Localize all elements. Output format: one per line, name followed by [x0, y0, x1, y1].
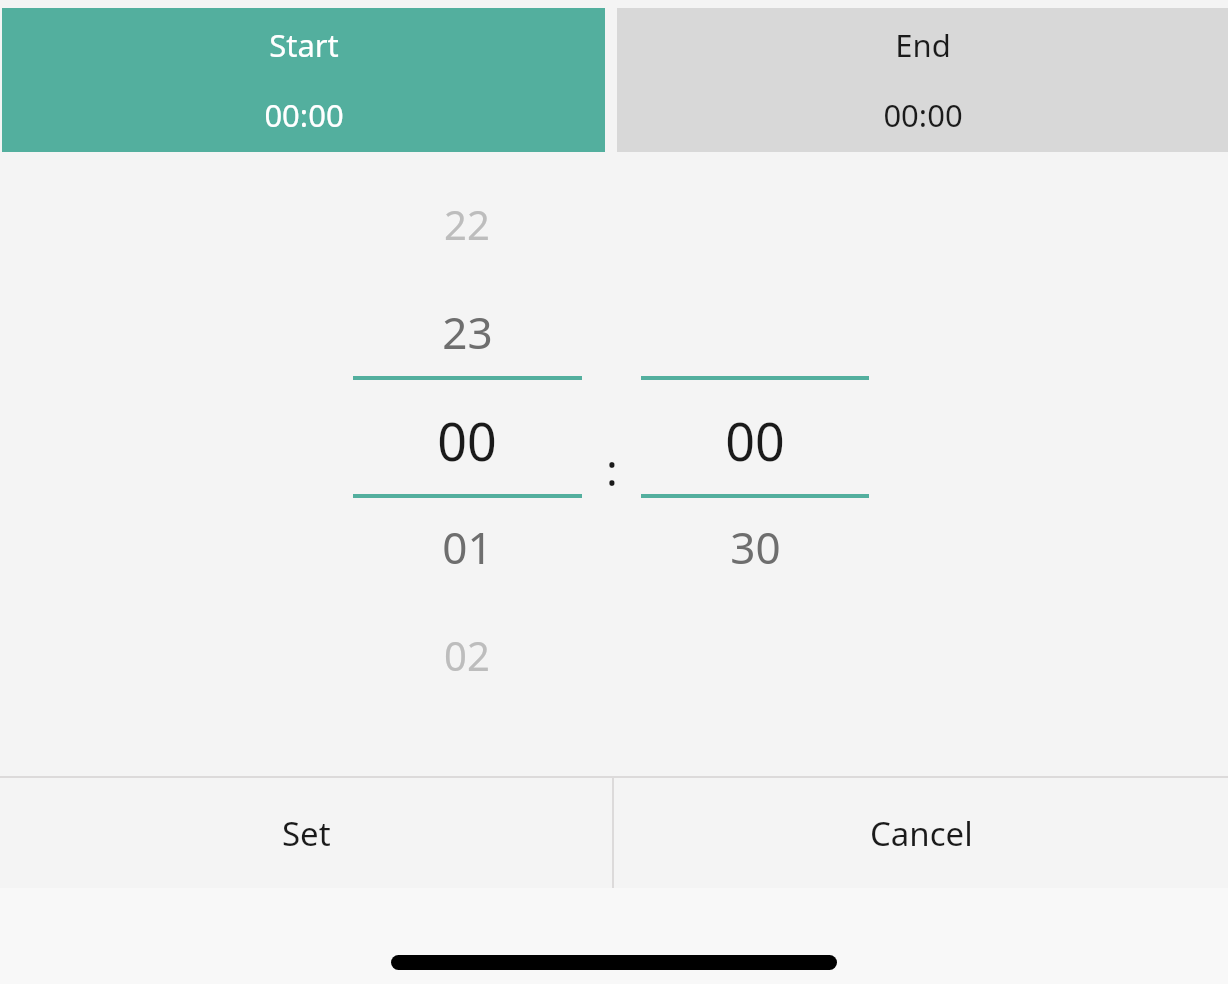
- button[interactable]: Set: [0, 778, 612, 888]
- staticText: 22: [444, 197, 490, 251]
- button[interactable]: Cancel: [614, 778, 1228, 888]
- staticText: Start: [269, 24, 339, 66]
- staticText: 02: [444, 628, 490, 682]
- staticText: :: [606, 439, 618, 489]
- staticText: Cancel: [870, 811, 973, 856]
- staticText: Set: [282, 811, 331, 856]
- staticText: 01: [442, 517, 493, 577]
- button[interactable]: Number picker: [641, 152, 869, 752]
- staticText: 30: [730, 517, 781, 577]
- staticText: 00: [725, 405, 785, 473]
- button[interactable]: Number picker: [353, 152, 582, 752]
- staticText: End: [895, 24, 951, 66]
- staticText: 00: [437, 405, 497, 473]
- other: Home gesture bar: [391, 955, 837, 970]
- staticText: 00:00: [883, 94, 963, 136]
- staticText: 00:00: [264, 94, 344, 136]
- button[interactable]: End: [617, 8, 1228, 152]
- staticText: 23: [442, 302, 493, 362]
- button[interactable]: Start: [2, 8, 605, 152]
